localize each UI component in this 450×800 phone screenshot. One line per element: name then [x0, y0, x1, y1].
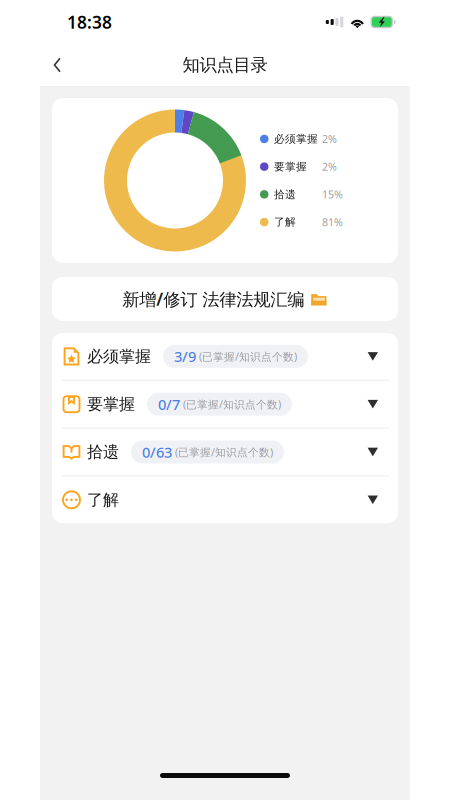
- staticText: 要掌握: [274, 160, 307, 173]
- staticText: (已掌握/知识点个数): [183, 397, 281, 411]
- staticText: 新增/修订 法律法规汇编: [122, 287, 304, 310]
- staticText: 2%: [322, 132, 337, 146]
- staticText: 0/7: [158, 394, 180, 414]
- button[interactable]: 了解: [52, 476, 398, 523]
- staticText: 15%: [322, 187, 343, 201]
- staticText: 18:38: [67, 10, 112, 33]
- staticText: 3/9: [174, 347, 196, 366]
- staticText: 2%: [322, 160, 337, 174]
- staticText: 拾遗: [274, 188, 296, 201]
- staticText: 知识点目录: [182, 54, 267, 76]
- button[interactable]: 要掌握: [52, 381, 398, 428]
- staticText: (已掌握/知识点个数): [199, 349, 297, 363]
- staticText: 0/63: [142, 442, 172, 462]
- button[interactable]: Back: [40, 45, 74, 84]
- staticText: 81%: [322, 215, 343, 229]
- staticText: 了解: [87, 490, 119, 510]
- button[interactable]: 必须掌握: [52, 333, 398, 380]
- staticText: 必须掌握: [87, 347, 151, 366]
- staticText: 了解: [274, 215, 296, 229]
- staticText: 拾遗: [87, 442, 119, 462]
- button[interactable]: 拾遗: [52, 429, 398, 475]
- button[interactable]: 新增/修订 法律法规汇编: [52, 277, 398, 321]
- staticText: (已掌握/知识点个数): [175, 445, 273, 459]
- staticText: 要掌握: [87, 394, 135, 414]
- staticText: 必须掌握: [274, 132, 318, 145]
